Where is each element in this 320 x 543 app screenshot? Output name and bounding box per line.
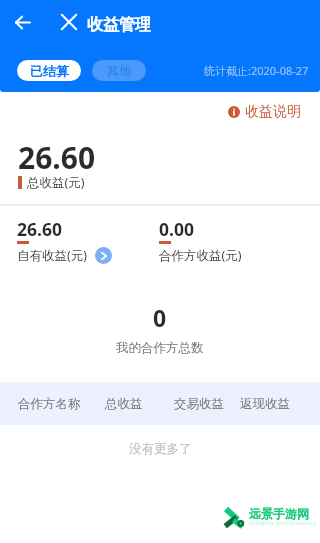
- staticText: 远景手游网: [249, 506, 309, 521]
- staticText: 26.60: [18, 137, 96, 178]
- staticText: 没有更多了: [129, 441, 192, 457]
- staticText: 总收益: [105, 396, 143, 412]
- staticText: 收益管理: [87, 15, 151, 35]
- staticText: 已结算: [30, 63, 69, 79]
- staticText: 自有收益(元): [17, 247, 88, 264]
- staticText: 我的合作方总数: [116, 340, 204, 356]
- button[interactable]: Close: [47, 0, 91, 44]
- staticText: yuanjing shouyouwang: [249, 519, 317, 527]
- staticText: 总收益(元): [27, 174, 85, 191]
- staticText: 0.00: [159, 217, 194, 241]
- staticText: 合作方名称: [18, 396, 81, 412]
- button[interactable]: Back: [1, 0, 45, 44]
- staticText: 26.60: [17, 217, 62, 241]
- staticText: 统计截止:2020-08-27: [204, 63, 309, 78]
- staticText: 合作方收益(元): [159, 247, 242, 264]
- staticText: 返现收益: [240, 396, 290, 412]
- staticText: 交易收益: [174, 396, 224, 412]
- button[interactable]: 自有收益详情: [95, 247, 112, 264]
- button[interactable]: 收益说明: [226, 101, 303, 123]
- button[interactable]: 已结算: [17, 60, 81, 81]
- staticText: 0: [153, 302, 167, 333]
- staticText: 收益说明: [245, 103, 301, 121]
- button[interactable]: 其他: [92, 60, 146, 81]
- staticText: 其他: [107, 63, 131, 78]
